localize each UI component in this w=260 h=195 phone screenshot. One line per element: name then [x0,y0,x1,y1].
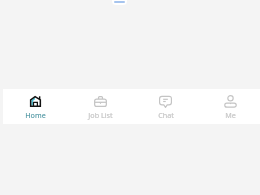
staticText: Me [225,110,236,120]
button[interactable]: Chat [133,89,198,124]
staticText: Chat [158,110,174,120]
button[interactable]: Job List [68,89,133,124]
other: Chat [159,95,172,108]
staticText: Home [25,110,46,120]
staticText: Job List [88,110,113,120]
other: Me [224,95,237,108]
button[interactable]: Home [3,89,68,124]
other: Home [29,95,42,108]
button[interactable]: Me [198,89,260,124]
other: Job List [94,95,107,108]
